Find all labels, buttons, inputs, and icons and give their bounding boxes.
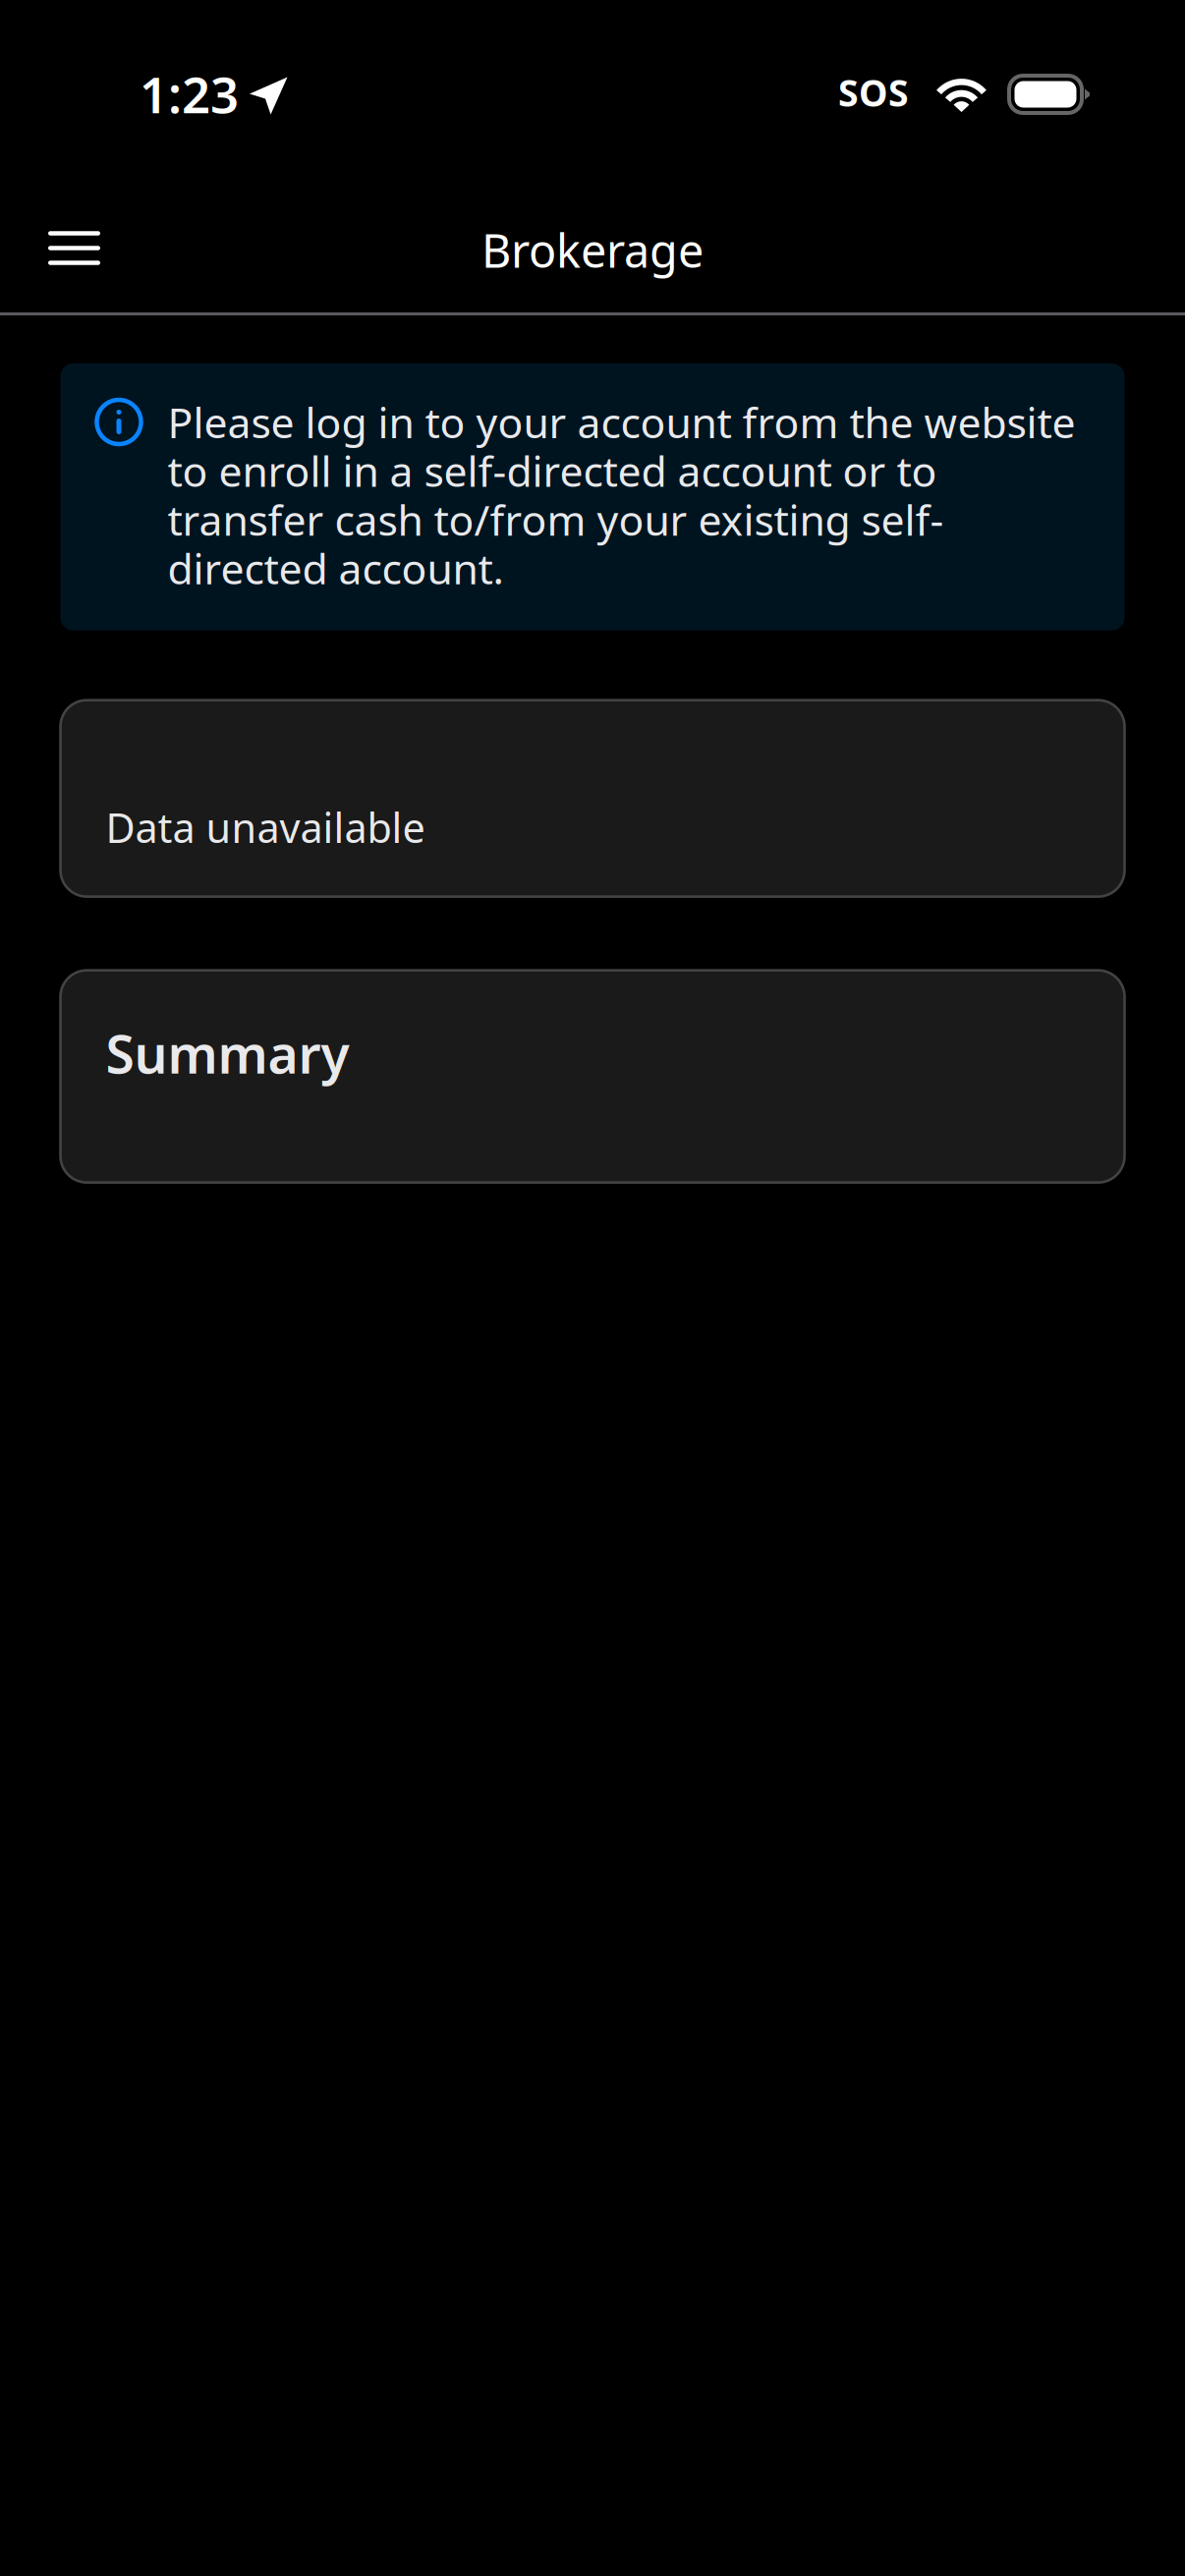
button[interactable]: Data unavailable bbox=[60, 700, 1125, 897]
button[interactable]: Summary bbox=[60, 970, 1125, 1182]
staticText: Brokerage bbox=[481, 220, 704, 280]
staticText: 1:23 bbox=[140, 61, 239, 127]
button[interactable]: Menu bbox=[9, 183, 140, 313]
staticText: Summary bbox=[106, 1018, 349, 1088]
staticText: SOS bbox=[838, 68, 909, 117]
staticText: Data unavailable bbox=[106, 800, 425, 854]
staticText: Please log in to your account from the w… bbox=[168, 394, 1075, 596]
